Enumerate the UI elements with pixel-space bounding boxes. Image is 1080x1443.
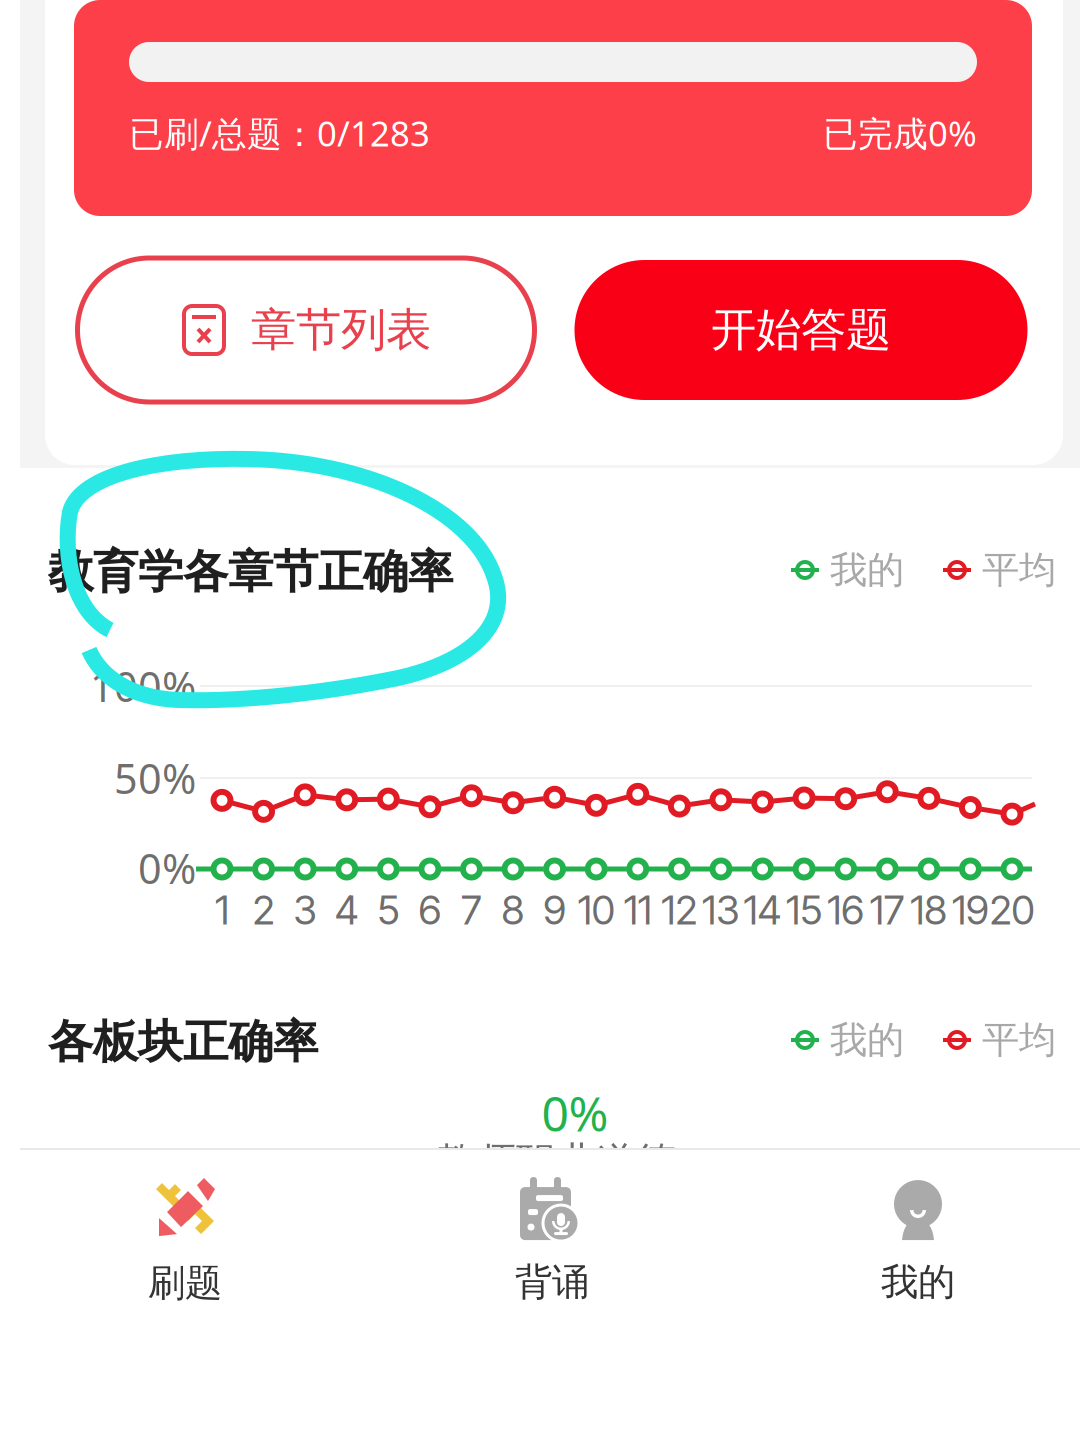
staticText: 我的 bbox=[881, 1259, 955, 1305]
staticText: 已完成0% bbox=[823, 110, 977, 156]
staticText: 教师职业道德 bbox=[436, 1137, 676, 1186]
staticText: 19 bbox=[952, 886, 989, 934]
staticText: 背诵 bbox=[515, 1259, 589, 1305]
button[interactable]: 背诵 bbox=[372, 1155, 732, 1325]
button[interactable]: 开始答题 bbox=[574, 260, 1027, 400]
staticText: 4 bbox=[335, 886, 359, 934]
staticText: 3 bbox=[293, 886, 317, 934]
staticText: 开始答题 bbox=[711, 302, 891, 358]
staticText: 100% bbox=[90, 659, 196, 713]
staticText: 20 bbox=[989, 886, 1034, 934]
staticText: 刷题 bbox=[148, 1260, 222, 1306]
staticText: 0% bbox=[541, 1081, 608, 1145]
staticText: 已刷/总题：0/1283 bbox=[129, 110, 430, 156]
staticText: 10 bbox=[578, 886, 615, 934]
staticText: 8 bbox=[502, 886, 525, 934]
staticText: 教育学各章节正确率 bbox=[48, 544, 453, 600]
staticText: 15 bbox=[786, 886, 822, 934]
button[interactable]: 章节列表 bbox=[77, 258, 534, 402]
staticText: 5 bbox=[377, 886, 399, 934]
staticText: 平均 bbox=[982, 1017, 1056, 1063]
staticText: 9 bbox=[543, 886, 566, 934]
staticText: 0% bbox=[138, 841, 196, 895]
staticText: 14 bbox=[743, 886, 781, 934]
staticText: 7 bbox=[461, 886, 482, 934]
staticText: 章节列表 bbox=[251, 302, 431, 358]
staticText: 1 bbox=[215, 886, 229, 934]
staticText: 2 bbox=[253, 886, 275, 934]
staticText: 16 bbox=[827, 886, 864, 934]
staticText: 我的 bbox=[830, 547, 904, 593]
staticText: 17 bbox=[870, 886, 905, 934]
staticText: 12 bbox=[661, 886, 697, 934]
button[interactable]: 刷题 bbox=[5, 1155, 365, 1325]
staticText: 平均 bbox=[982, 547, 1056, 593]
staticText: 各板块正确率 bbox=[48, 1014, 318, 1070]
staticText: 11 bbox=[624, 886, 652, 934]
button[interactable]: 我的 bbox=[738, 1155, 1080, 1325]
staticText: 6 bbox=[418, 886, 441, 934]
staticText: 50% bbox=[114, 751, 196, 805]
staticText: 18 bbox=[910, 886, 947, 934]
staticText: 13 bbox=[702, 886, 740, 934]
staticText: 我的 bbox=[830, 1017, 904, 1063]
